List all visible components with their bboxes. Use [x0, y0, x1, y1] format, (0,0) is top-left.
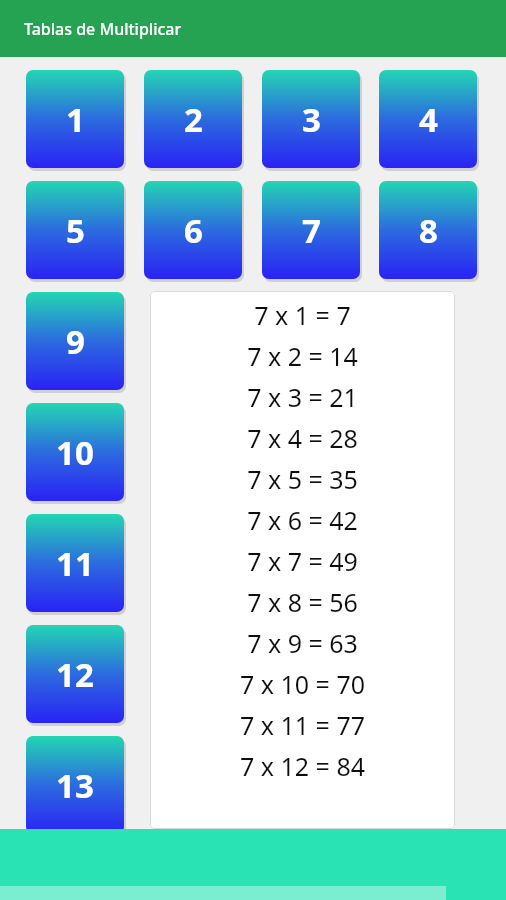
button[interactable]: 8: [379, 181, 477, 279]
button[interactable]: 1: [26, 70, 124, 168]
staticText: 12: [56, 652, 94, 697]
staticText: 7: [302, 208, 321, 253]
staticText: 7 x 12 = 84: [150, 749, 455, 783]
staticText: 4: [419, 97, 438, 142]
staticText: 7 x 11 = 77: [150, 708, 455, 742]
staticText: 7 x 4 = 28: [150, 421, 455, 455]
staticText: 8: [419, 208, 438, 253]
staticText: 7 x 7 = 49: [150, 544, 455, 578]
staticText: 3: [302, 97, 321, 142]
staticText: Tablas de Multiplicar: [24, 18, 182, 40]
staticText: 1: [66, 97, 85, 142]
button[interactable]: 12: [26, 625, 124, 723]
staticText: 7 x 6 = 42: [150, 503, 455, 537]
staticText: 7 x 9 = 63: [150, 626, 455, 660]
staticText: 11: [56, 541, 94, 586]
button[interactable]: 4: [379, 70, 477, 168]
staticText: 5: [66, 208, 85, 253]
button[interactable]: 6: [144, 181, 242, 279]
staticText: 10: [56, 430, 94, 475]
staticText: 7 x 8 = 56: [150, 585, 455, 619]
button[interactable]: 13: [26, 736, 124, 834]
staticText: 9: [66, 319, 85, 364]
button[interactable]: 9: [26, 292, 124, 390]
button[interactable]: 10: [26, 403, 124, 501]
staticText: 7 x 2 = 14: [150, 339, 455, 373]
staticText: 6: [184, 208, 203, 253]
button[interactable]: 3: [262, 70, 360, 168]
staticText: 7 x 3 = 21: [150, 380, 455, 414]
button[interactable]: 11: [26, 514, 124, 612]
button[interactable]: 5: [26, 181, 124, 279]
staticText: 7 x 5 = 35: [150, 462, 455, 496]
staticText: 7 x 1 = 7: [150, 298, 455, 332]
button[interactable]: 7: [262, 181, 360, 279]
button[interactable]: 2: [144, 70, 242, 168]
staticText: 2: [184, 97, 203, 142]
staticText: 13: [56, 763, 94, 808]
staticText: 7 x 10 = 70: [150, 667, 455, 701]
